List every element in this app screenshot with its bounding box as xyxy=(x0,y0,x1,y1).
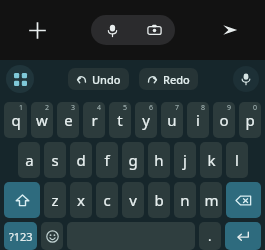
staticText: p xyxy=(245,110,255,130)
button[interactable]: l xyxy=(226,142,248,178)
staticText: v xyxy=(129,190,137,210)
button[interactable]: Undo xyxy=(68,68,129,90)
staticText: 9 xyxy=(227,103,232,113)
button[interactable]: Voice input xyxy=(91,15,133,45)
staticText: r xyxy=(91,110,98,130)
staticText: 3 xyxy=(71,103,76,113)
staticText: q xyxy=(11,110,21,130)
staticText: w xyxy=(36,110,48,130)
staticText: x xyxy=(77,190,85,210)
button[interactable]: n xyxy=(174,182,196,218)
staticText: i xyxy=(196,110,200,130)
button[interactable]: b xyxy=(148,182,170,218)
button[interactable]: k xyxy=(200,142,222,178)
button[interactable]: r xyxy=(83,102,105,138)
staticText: 5 xyxy=(123,103,128,113)
button[interactable]: a xyxy=(18,142,40,178)
button[interactable]: s xyxy=(44,142,66,178)
button[interactable]: p xyxy=(239,102,261,138)
button[interactable]: Enter xyxy=(225,222,261,250)
staticText: 4 xyxy=(97,103,102,113)
button[interactable]: o xyxy=(213,102,235,138)
staticText: l xyxy=(235,150,239,170)
button[interactable]: Voice typing xyxy=(233,66,259,92)
staticText: g xyxy=(128,150,138,170)
staticText: d xyxy=(76,150,86,170)
staticText: z xyxy=(51,190,59,210)
staticText: 6 xyxy=(149,103,154,113)
button[interactable]: h xyxy=(148,142,170,178)
button[interactable]: j xyxy=(174,142,196,178)
button[interactable]: Redo xyxy=(139,68,198,90)
staticText: 8 xyxy=(201,103,206,113)
staticText: h xyxy=(154,150,164,170)
button[interactable]: Symbols xyxy=(4,222,37,250)
button[interactable]: x xyxy=(70,182,92,218)
staticText: m xyxy=(204,190,219,210)
staticText: c xyxy=(103,190,111,210)
staticText: . xyxy=(208,227,212,245)
button[interactable]: Shift xyxy=(4,182,40,218)
staticText: y xyxy=(142,110,150,130)
staticText: Undo xyxy=(92,72,121,87)
staticText: s xyxy=(51,150,59,170)
button[interactable]: v xyxy=(122,182,144,218)
button[interactable]: e xyxy=(57,102,79,138)
button[interactable]: z xyxy=(44,182,66,218)
button[interactable]: i xyxy=(187,102,209,138)
staticText: n xyxy=(180,190,190,210)
button[interactable]: Add attachment xyxy=(20,13,54,47)
staticText: f xyxy=(104,150,110,170)
button[interactable]: u xyxy=(161,102,183,138)
staticText: t xyxy=(117,110,123,130)
button[interactable]: c xyxy=(96,182,118,218)
button[interactable]: f xyxy=(96,142,118,178)
button[interactable]: w xyxy=(31,102,53,138)
staticText: 2 xyxy=(45,103,50,113)
staticText: e xyxy=(64,110,73,130)
staticText: a xyxy=(25,150,34,170)
staticText: ?123 xyxy=(9,229,33,244)
staticText: j xyxy=(183,150,187,170)
staticText: b xyxy=(154,190,164,210)
staticText: k xyxy=(207,150,216,170)
staticText: 1 xyxy=(19,103,24,113)
button[interactable]: Send xyxy=(213,13,247,47)
button[interactable]: y xyxy=(135,102,157,138)
button[interactable]: q xyxy=(4,102,27,138)
staticText: o xyxy=(219,110,229,130)
button[interactable]: Period xyxy=(199,222,221,250)
staticText: Redo xyxy=(163,72,190,87)
staticText: 0 xyxy=(253,103,258,113)
button[interactable]: Toolbar menu xyxy=(6,65,34,93)
staticText: u xyxy=(167,110,177,130)
button[interactable]: Camera xyxy=(133,15,175,45)
button[interactable]: t xyxy=(109,102,131,138)
button[interactable]: d xyxy=(70,142,92,178)
button[interactable]: m xyxy=(200,182,222,218)
button[interactable]: g xyxy=(122,142,144,178)
button[interactable]: Emoji xyxy=(41,222,63,250)
button[interactable]: Backspace xyxy=(226,182,261,218)
staticText: 7 xyxy=(175,103,180,113)
